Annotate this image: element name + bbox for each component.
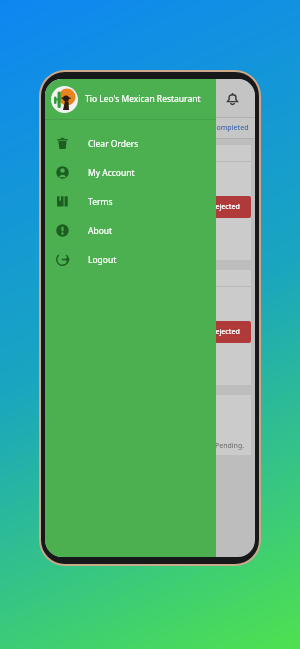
button[interactable]: Clear Orders — [45, 129, 216, 158]
staticText: Completed — [212, 123, 249, 133]
staticText: Rejected — [211, 202, 240, 212]
button[interactable]: Rejected — [199, 321, 251, 343]
staticText: Terms — [88, 196, 113, 208]
staticText: Pending. — [215, 441, 245, 451]
staticText: Rejected — [211, 327, 240, 337]
button[interactable]: My Account — [45, 158, 216, 187]
staticText: Logout — [88, 254, 117, 266]
staticText: About — [88, 225, 113, 237]
button[interactable]: Rejected — [49, 145, 251, 260]
staticText: Clear Orders — [88, 138, 139, 150]
staticText: Tio Leo's Mexican Restaurant — [85, 93, 201, 105]
staticText: My Account — [88, 167, 135, 179]
button[interactable]: About — [45, 216, 216, 245]
button[interactable]: Rejected — [49, 270, 251, 385]
button[interactable]: Tio Leo's Mexican Restaurant — [45, 79, 216, 119]
button[interactable]: Terms — [45, 187, 216, 216]
button[interactable]: Notifications — [219, 85, 245, 111]
button[interactable]: Rejected — [199, 196, 251, 218]
button[interactable]: Logout — [45, 245, 216, 274]
